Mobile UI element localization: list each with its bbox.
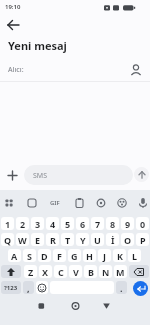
- staticText: M: [116, 266, 125, 278]
- button[interactable]: O: [121, 233, 134, 246]
- staticText: U: [94, 234, 101, 246]
- staticText: 5: [65, 218, 71, 230]
- button[interactable]: Q: [1, 233, 14, 246]
- button[interactable]: [133, 281, 148, 296]
- button[interactable]: P: [136, 233, 149, 246]
- staticText: F: [57, 250, 62, 262]
- button[interactable]: [129, 265, 149, 278]
- button[interactable]: E: [31, 233, 44, 246]
- staticText: Z: [28, 266, 34, 278]
- staticText: ,: [27, 282, 30, 294]
- staticText: 9: [125, 218, 131, 230]
- button[interactable]: K: [113, 249, 126, 262]
- button[interactable]: H: [83, 249, 96, 262]
- button[interactable]: SMS: [24, 165, 133, 185]
- staticText: T: [65, 234, 71, 246]
- staticText: 7: [95, 218, 101, 230]
- button[interactable]: X: [39, 265, 52, 278]
- button[interactable]: Y: [76, 233, 89, 246]
- button[interactable]: R: [46, 233, 59, 246]
- staticText: A: [11, 250, 18, 262]
- staticText: SMS: [33, 171, 48, 181]
- button[interactable]: 9: [121, 217, 134, 230]
- staticText: W: [18, 234, 27, 246]
- staticText: 8: [110, 218, 116, 230]
- button[interactable]: L: [128, 249, 141, 262]
- button[interactable]: 3: [31, 217, 44, 230]
- button[interactable]: 7: [91, 217, 104, 230]
- staticText: 6: [80, 218, 86, 230]
- button[interactable]: [1, 265, 21, 278]
- button[interactable]: 5: [61, 217, 74, 230]
- staticText: S: [27, 250, 32, 262]
- button[interactable]: 2: [16, 217, 29, 230]
- button[interactable]: T: [61, 233, 74, 246]
- button[interactable]: C: [54, 265, 67, 278]
- button[interactable]: [36, 281, 48, 294]
- button[interactable]: W: [16, 233, 29, 246]
- staticText: B: [88, 266, 94, 278]
- button[interactable]: D: [38, 249, 51, 262]
- staticText: 4: [50, 218, 56, 230]
- staticText: C: [58, 266, 64, 278]
- button[interactable]: Z: [24, 265, 37, 278]
- staticText: R: [50, 234, 56, 246]
- button[interactable]: V: [69, 265, 82, 278]
- staticText: P: [140, 234, 146, 246]
- staticText: O: [124, 234, 132, 246]
- button[interactable]: Alıcı:: [0, 60, 150, 81]
- button[interactable]: S: [23, 249, 36, 262]
- staticText: E: [35, 234, 41, 246]
- button[interactable]: 6: [76, 217, 89, 230]
- button[interactable]: U: [91, 233, 104, 246]
- button[interactable]: A: [8, 249, 21, 262]
- staticText: Y: [80, 234, 86, 246]
- button[interactable]: .: [116, 281, 127, 294]
- staticText: 19:10: [5, 3, 21, 11]
- staticText: N: [102, 266, 110, 278]
- button[interactable]: G: [68, 249, 81, 262]
- button[interactable]: 1: [1, 217, 14, 230]
- staticText: İ: [111, 234, 115, 246]
- button[interactable]: J: [98, 249, 111, 262]
- button[interactable]: ?123: [1, 281, 21, 294]
- staticText: ?123: [4, 284, 18, 292]
- staticText: X: [42, 266, 49, 278]
- button[interactable]: M: [114, 265, 127, 278]
- staticText: Q: [4, 234, 12, 246]
- button[interactable]: B: [84, 265, 97, 278]
- staticText: Yeni mesaj: [8, 38, 67, 53]
- staticText: G: [71, 250, 78, 262]
- button[interactable]: F: [53, 249, 66, 262]
- staticText: H: [86, 250, 93, 262]
- staticText: 2: [20, 218, 26, 230]
- button[interactable]: N: [99, 265, 112, 278]
- staticText: 3: [35, 218, 41, 230]
- button[interactable]: İ: [106, 233, 119, 246]
- button[interactable]: [134, 167, 149, 182]
- staticText: V: [73, 266, 79, 278]
- button[interactable]: 8: [106, 217, 119, 230]
- staticText: .: [120, 282, 123, 294]
- staticText: GIF: [50, 199, 60, 207]
- staticText: Alıcı:: [8, 65, 24, 75]
- button[interactable]: ,: [23, 281, 34, 294]
- staticText: 1: [5, 218, 11, 230]
- staticText: 0: [140, 218, 146, 230]
- staticText: J: [103, 250, 106, 262]
- button[interactable]: [4, 16, 22, 34]
- button[interactable]: [2, 165, 22, 185]
- staticText: L: [132, 250, 138, 262]
- staticText: K: [117, 250, 123, 262]
- staticText: D: [41, 250, 48, 262]
- button[interactable]: 4: [46, 217, 59, 230]
- button[interactable]: 0: [136, 217, 149, 230]
